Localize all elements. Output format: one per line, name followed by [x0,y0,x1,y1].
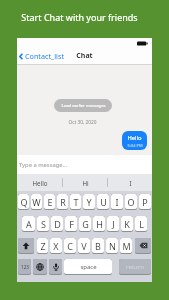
staticText: J [112,218,115,230]
staticText: S [41,218,46,230]
staticText: Chat [76,51,93,61]
staticText: W [32,196,41,208]
button[interactable]: B [92,238,104,254]
staticText: return [126,263,144,271]
button[interactable]: M [120,238,132,254]
button[interactable]: K [121,216,133,232]
button[interactable]: E [44,194,55,210]
button[interactable]: W [31,194,42,210]
staticText: V [81,240,87,252]
staticText: G [82,218,89,230]
button[interactable]: O [125,194,137,210]
button[interactable]: Q [18,194,29,210]
staticText: I [115,196,119,208]
button[interactable]: A [22,216,35,232]
button[interactable]: Load earlier messages [54,99,112,112]
button[interactable]: X [50,238,62,254]
staticText: Start Chat with your friends [21,11,138,23]
button[interactable]: S [37,216,49,232]
button[interactable]: G [79,216,91,232]
staticText: 5:04 PM [127,143,143,148]
button[interactable]: F [65,216,77,232]
button[interactable]: return [119,259,151,275]
button[interactable]: Hello [17,174,62,191]
staticText: space [80,263,97,271]
staticText: B [95,240,101,252]
staticText: Load earlier messages [61,103,106,109]
button[interactable] [33,259,47,275]
staticText: Hello [32,179,48,187]
staticText: L [139,218,144,230]
button[interactable]: space [64,259,112,275]
button[interactable] [49,259,62,275]
staticText: Type a message... [19,161,68,169]
button[interactable]: 123 [18,259,31,275]
button[interactable]: T [70,194,81,210]
staticText: C [67,240,73,252]
button[interactable]: L [135,216,147,232]
staticText: Contact_list [25,51,64,61]
button[interactable]: J [107,216,119,232]
button[interactable] [18,238,34,254]
button[interactable]: C [64,238,76,254]
button[interactable]: V [78,238,90,254]
staticText: Hello [127,134,142,142]
button[interactable]: Hello [122,131,147,150]
staticText: D [54,218,61,230]
staticText: N [109,240,116,252]
button[interactable]: Contact_list [19,51,64,61]
staticText: A [26,218,32,230]
staticText: M [122,240,131,252]
staticText: Y [86,196,92,208]
button[interactable]: R [57,194,68,210]
staticText: I [129,179,132,187]
button[interactable]: P [139,194,151,210]
button[interactable]: I [111,194,123,210]
button[interactable]: H [93,216,105,232]
staticText: X [53,240,59,252]
button[interactable]: D [51,216,63,232]
button[interactable]: Y [83,194,95,210]
staticText: F [69,218,74,230]
staticText: H [96,218,103,230]
staticText: T [73,196,79,208]
button[interactable]: N [106,238,118,254]
staticText: Q [20,196,28,208]
staticText: 123 [21,264,29,270]
button[interactable]: Hi [63,174,107,191]
staticText: E [47,196,53,208]
button[interactable]: Z [37,238,48,254]
staticText: P [142,196,148,208]
staticText: O [127,196,135,208]
button[interactable]: Type a message... [17,155,152,174]
staticText: U [100,196,107,208]
staticText: K [124,218,130,230]
staticText: Z [40,240,46,252]
button[interactable]: I [108,174,152,191]
staticText: Hi [82,179,89,187]
staticText: R [60,196,66,208]
button[interactable]: U [97,194,109,210]
button[interactable] [135,238,151,254]
staticText: Oct 30, 2020 [68,119,97,126]
